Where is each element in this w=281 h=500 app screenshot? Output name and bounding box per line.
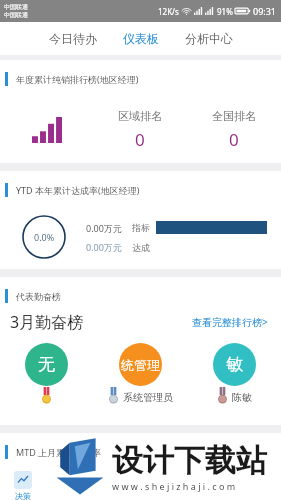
staticText: 设计下载站	[112, 441, 267, 480]
staticText: 统管理	[121, 357, 160, 373]
staticText: 0.00万元	[86, 222, 128, 234]
button[interactable]: 查看完整排行榜>	[189, 312, 271, 332]
staticText: 查看完整排行榜>	[192, 315, 268, 329]
button[interactable]: YTD 本年累计达成率(地区经理)	[0, 171, 281, 269]
staticText: 代表勤奋榜	[16, 291, 61, 302]
staticText: 0.00万元	[86, 241, 128, 253]
staticText: 全国排名	[212, 109, 256, 123]
staticText: 陈敏	[232, 391, 252, 404]
button[interactable]: 今日待办	[45, 27, 101, 50]
button[interactable]: 敏	[187, 343, 281, 407]
staticText: 仪表板	[123, 31, 159, 46]
staticText: 0.0%	[34, 231, 55, 243]
staticText: 0	[135, 128, 145, 151]
button[interactable]: 年度累计纯销排行榜(地区经理)	[0, 60, 281, 163]
button[interactable]: 仪表板	[119, 27, 163, 50]
staticText: 中国联通	[4, 3, 28, 11]
staticText: 决策	[15, 491, 31, 500]
staticText: 区域排名	[118, 109, 162, 123]
staticText: MTD 上月累计达成率	[16, 446, 102, 458]
staticText: 09:31	[253, 5, 277, 17]
staticText: YTD 本年累计达成率(地区经理)	[16, 184, 140, 196]
staticText: 中国联通	[4, 11, 28, 19]
staticText: 指标	[132, 222, 150, 233]
staticText: 12K/s	[158, 6, 179, 17]
staticText: 3月勤奋榜	[10, 311, 84, 333]
staticText: 今日待办	[49, 31, 97, 46]
button[interactable]: MTD 上月累计达成率	[0, 433, 281, 500]
staticText: 分析中心	[185, 31, 233, 46]
staticText: 达成	[132, 242, 150, 253]
staticText: 无	[38, 354, 55, 375]
button[interactable]: 统管理	[93, 343, 187, 407]
other: 决策	[14, 471, 32, 489]
button[interactable]: 无	[0, 343, 93, 407]
staticText: 年度累计纯销排行榜(地区经理)	[16, 73, 139, 85]
staticText: 敏	[226, 354, 243, 375]
staticText: 0	[229, 128, 239, 151]
staticText: 91%	[217, 6, 233, 17]
button[interactable]: 分析中心	[181, 27, 237, 50]
staticText: w w w . s h e j i z h a j i . c o m	[112, 480, 236, 492]
staticText: 系统管理员	[123, 391, 173, 404]
